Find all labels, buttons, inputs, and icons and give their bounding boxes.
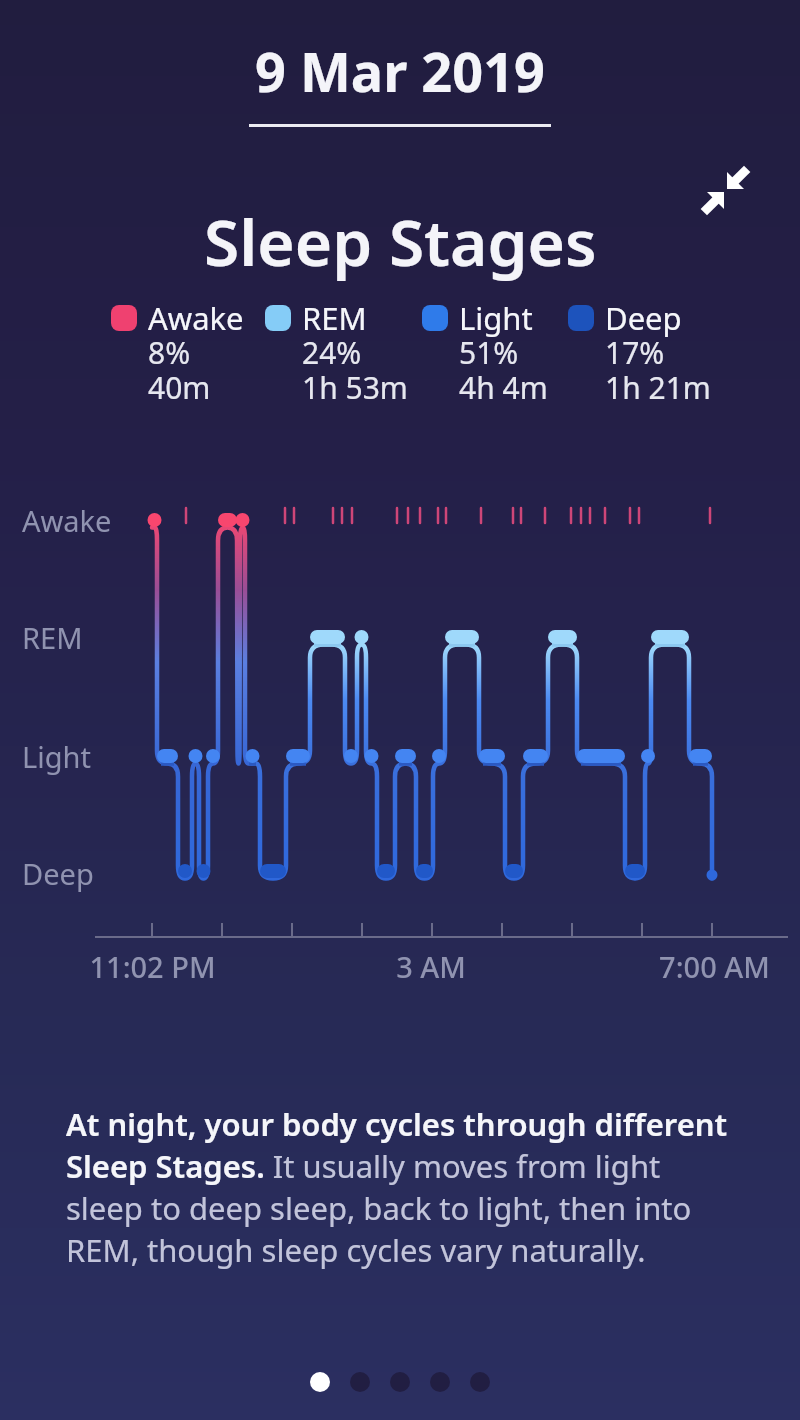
staticText: 11:02 PM [89, 947, 216, 986]
staticText: Sleep Stages. It usually moves from ligh… [66, 1145, 661, 1187]
staticText: REM [302, 297, 367, 339]
staticText: 51% [459, 332, 519, 373]
button[interactable] [470, 1372, 490, 1392]
button[interactable] [696, 160, 752, 216]
button[interactable] [390, 1372, 410, 1392]
staticText: At night, your body cycles through diffe… [66, 1103, 728, 1145]
staticText: REM, though sleep cycles vary naturally. [66, 1229, 646, 1271]
staticText: REM [22, 618, 83, 657]
staticText: 1h 53m [302, 367, 408, 408]
staticText: 40m [148, 367, 211, 408]
staticText: Sleep Stages [204, 198, 597, 285]
staticText: 4h 4m [459, 367, 548, 408]
staticText: 3 AM [396, 947, 466, 986]
staticText: sleep to deep sleep, back to light, then… [66, 1187, 692, 1229]
staticText: 1h 21m [605, 367, 711, 408]
staticText: Light [459, 297, 533, 339]
button[interactable] [430, 1372, 450, 1392]
staticText: 17% [605, 332, 665, 373]
button[interactable] [310, 1372, 330, 1392]
button[interactable] [350, 1372, 370, 1392]
staticText: 7:00 AM [659, 947, 770, 986]
staticText: 9 Mar 2019 [255, 34, 545, 108]
staticText: Awake [148, 297, 244, 339]
staticText: Awake [22, 501, 112, 540]
staticText: 8% [148, 332, 191, 373]
staticText: 24% [302, 332, 362, 373]
staticText: Light [22, 737, 91, 776]
staticText: Deep [22, 854, 94, 893]
staticText: Deep [605, 297, 682, 339]
